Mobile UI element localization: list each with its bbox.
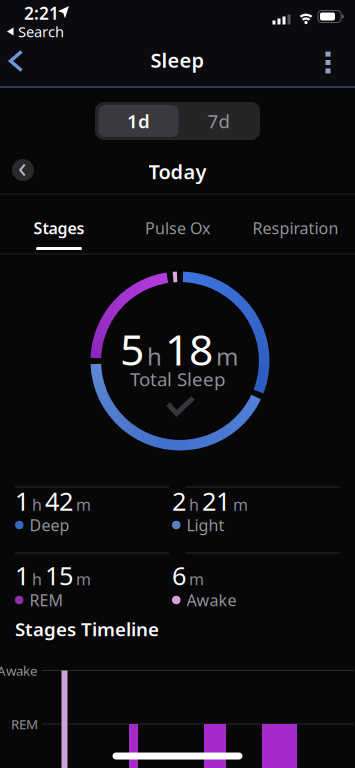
staticText: Stages bbox=[33, 217, 84, 239]
staticText: Pulse Ox bbox=[145, 217, 210, 239]
staticText: m bbox=[76, 494, 91, 515]
button[interactable]: Search bbox=[6, 22, 64, 41]
staticText: Total Sleep bbox=[130, 367, 225, 391]
staticText: Awake bbox=[0, 662, 38, 679]
staticText: h bbox=[32, 494, 42, 515]
staticText: REM bbox=[29, 589, 63, 611]
staticText: 1 bbox=[15, 484, 29, 518]
staticText: 2 bbox=[172, 484, 186, 518]
staticText: 7d bbox=[207, 109, 229, 133]
staticText: 18 bbox=[165, 321, 213, 377]
staticText: h bbox=[147, 340, 162, 372]
staticText: 21 bbox=[202, 484, 230, 518]
staticText: 1 bbox=[15, 559, 29, 592]
staticText: Today bbox=[148, 158, 206, 185]
staticText: h bbox=[32, 568, 42, 590]
staticText: 6 bbox=[172, 559, 186, 592]
staticText: m bbox=[216, 340, 238, 372]
button[interactable] bbox=[7, 50, 25, 72]
button[interactable]: Stages bbox=[0, 206, 118, 250]
staticText: m bbox=[189, 568, 204, 590]
staticText: Respiration bbox=[252, 217, 338, 239]
button[interactable]: Respiration bbox=[236, 206, 354, 250]
button[interactable] bbox=[12, 159, 34, 181]
staticText: m bbox=[233, 494, 248, 515]
staticText: Search bbox=[18, 22, 64, 41]
staticText: Light bbox=[186, 514, 224, 536]
staticText: 2:21 bbox=[24, 1, 59, 24]
staticText: m bbox=[76, 568, 91, 590]
staticText: 42 bbox=[45, 484, 73, 518]
button[interactable]: Pulse Ox bbox=[118, 206, 236, 250]
staticText: REM bbox=[11, 715, 38, 733]
staticText: 1d bbox=[127, 109, 150, 133]
staticText: Deep bbox=[29, 514, 69, 536]
button[interactable] bbox=[325, 52, 330, 73]
button[interactable]: 1d bbox=[98, 105, 178, 137]
staticText: 5 bbox=[120, 321, 144, 377]
staticText: h bbox=[189, 494, 199, 515]
staticText: Sleep bbox=[150, 47, 204, 73]
button[interactable]: 7d bbox=[178, 105, 258, 137]
staticText: Awake bbox=[186, 589, 236, 611]
staticText: 15 bbox=[45, 559, 73, 592]
staticText: Stages Timeline bbox=[15, 617, 159, 641]
